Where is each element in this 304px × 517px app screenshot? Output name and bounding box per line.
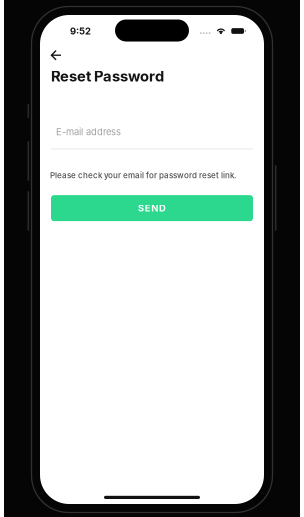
staticText: Please check your email for password res…	[50, 170, 236, 180]
button[interactable]: Back	[40, 35, 72, 63]
staticText: E-mail address	[56, 126, 121, 137]
staticText: SEND	[138, 202, 166, 214]
staticText: Reset Password	[51, 67, 164, 85]
button[interactable]: SEND	[51, 195, 253, 221]
staticText: 9:52	[70, 25, 91, 37]
